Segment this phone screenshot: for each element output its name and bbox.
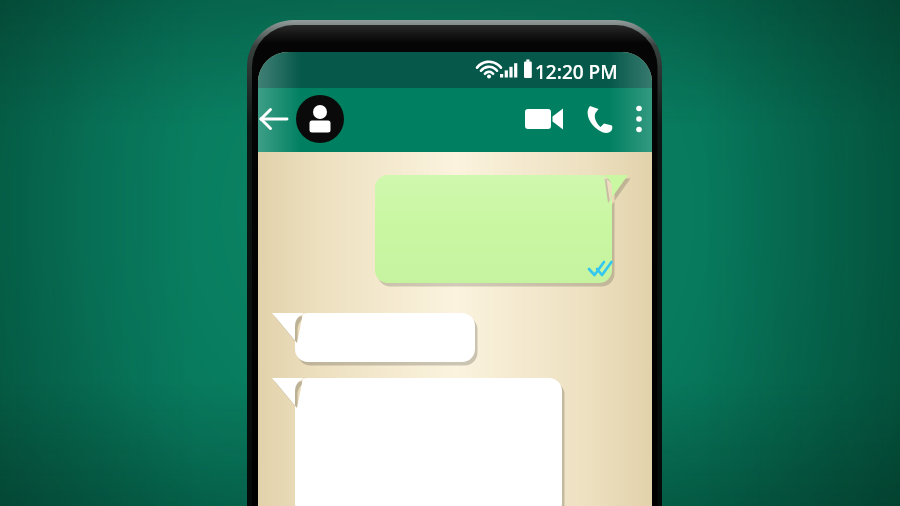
button[interactable]: Contact profile (296, 95, 346, 145)
button[interactable]: Received message (272, 313, 475, 362)
button[interactable]: More options (626, 96, 654, 142)
button[interactable]: Sent message (375, 175, 628, 283)
button[interactable]: Voice call (578, 96, 624, 142)
button[interactable]: Video call (518, 96, 570, 142)
staticText: 12:20 PM (535, 59, 618, 85)
button[interactable]: Back (258, 98, 300, 142)
button[interactable]: Received message (272, 378, 562, 506)
